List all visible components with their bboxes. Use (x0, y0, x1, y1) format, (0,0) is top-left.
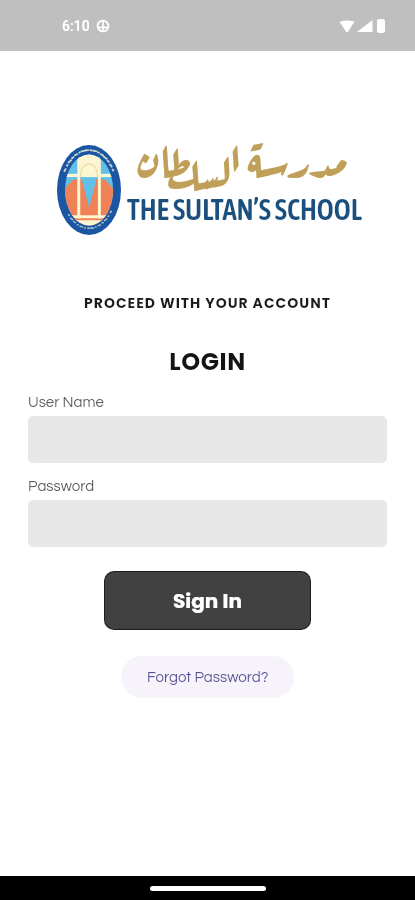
button[interactable]: Sign In (105, 572, 310, 629)
other: School crest (57, 145, 121, 235)
staticText: Sign In (173, 587, 242, 615)
button[interactable]: Forgot Password? (121, 656, 294, 698)
staticText: 6:10 (62, 18, 90, 34)
staticText: LOGIN (0, 345, 415, 379)
staticText: Forgot Password? (147, 670, 269, 685)
staticText: THE SULTAN’S SCHOOL (127, 193, 362, 226)
staticText: User Name (28, 395, 104, 410)
staticText: Password (28, 479, 95, 494)
staticText: PROCEED WITH YOUR ACCOUNT (0, 293, 415, 313)
staticText: مدرسة السلطان (138, 121, 348, 190)
